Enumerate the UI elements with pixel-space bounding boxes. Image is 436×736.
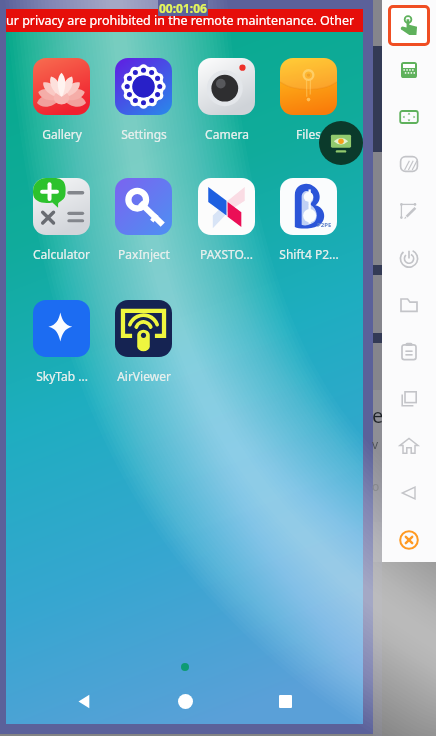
button[interactable]: Gallery xyxy=(21,58,102,142)
button[interactable]: App switcher xyxy=(387,378,431,420)
button[interactable]: End session xyxy=(387,519,431,561)
staticText: AirViewer xyxy=(117,368,171,384)
staticText: Gallery xyxy=(42,126,82,142)
button[interactable]: Screen recording xyxy=(387,143,431,185)
staticText: Shift4 P2... xyxy=(279,246,339,262)
button[interactable]: AirViewer xyxy=(103,300,184,384)
button[interactable]: Remote session active xyxy=(319,121,363,165)
button[interactable]: Recents xyxy=(262,681,308,721)
button[interactable]: PaxInject xyxy=(103,178,184,262)
staticText: os xyxy=(372,478,382,494)
button[interactable]: Back xyxy=(387,472,431,514)
button[interactable]: Keyboard xyxy=(387,49,431,91)
staticText: 00:01:06 xyxy=(159,0,207,16)
staticText: e xyxy=(372,402,382,424)
button[interactable]: Settings xyxy=(103,58,184,142)
staticText: PAXSTO... xyxy=(200,246,253,262)
staticText: vh xyxy=(372,436,382,452)
staticText: P2PE xyxy=(317,221,332,229)
button[interactable]: SkyTab ... xyxy=(21,300,102,384)
staticText: Calculator xyxy=(33,246,90,262)
button[interactable]: PAXSTO... xyxy=(186,178,267,262)
button[interactable]: Camera xyxy=(186,58,267,142)
staticText: Camera xyxy=(205,126,249,142)
button[interactable]: Touch control xyxy=(388,5,430,46)
staticText: ur privacy are prohibited in the remote … xyxy=(6,12,355,29)
button[interactable]: Restart device xyxy=(387,237,431,279)
button[interactable]: Back xyxy=(61,681,107,721)
button[interactable]: Files xyxy=(268,58,349,142)
staticText: Files xyxy=(296,126,321,142)
button[interactable]: File manager xyxy=(387,284,431,326)
staticText: SkyTab ... xyxy=(36,368,88,384)
button[interactable]: P2PE xyxy=(268,178,349,262)
button[interactable]: Clipboard xyxy=(387,331,431,373)
staticText: PaxInject xyxy=(118,246,170,262)
button[interactable]: Home xyxy=(162,681,208,721)
button[interactable]: Home xyxy=(387,425,431,467)
staticText: Settings xyxy=(121,126,167,142)
button[interactable]: Fit screen xyxy=(387,96,431,138)
button[interactable]: Calculator xyxy=(21,178,102,262)
button[interactable]: Annotate xyxy=(387,190,431,232)
